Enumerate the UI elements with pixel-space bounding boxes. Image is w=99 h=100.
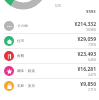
- button[interactable]: その他: [0, 19, 99, 33]
- staticText: 衣服・美容: [17, 84, 47, 89]
- staticText: ¥9,850: [80, 81, 96, 88]
- button[interactable]: 食費: [0, 49, 99, 63]
- staticText: 4.47%: [88, 73, 96, 77]
- staticText: 2.71%: [88, 88, 96, 92]
- button[interactable]: 趣味・娯楽: [0, 64, 99, 78]
- staticText: 7.99%: [88, 43, 96, 47]
- staticText: 趣味・娯楽: [17, 69, 47, 74]
- staticText: その他: [17, 24, 47, 29]
- staticText: ¥23,493: [77, 51, 96, 58]
- staticText: 0.2%: [55, 4, 61, 8]
- staticText: 58.98%: [86, 28, 96, 32]
- staticText: ¥593: [86, 9, 96, 15]
- staticText: 住宅: [17, 39, 47, 44]
- staticText: 食費: [17, 54, 47, 59]
- staticText: ¥29,059: [77, 36, 96, 43]
- staticText: ¥214,332: [74, 21, 96, 28]
- staticText: 6.46%: [88, 58, 96, 62]
- staticText: ¥16,281: [77, 66, 96, 73]
- button[interactable]: 衣服・美容: [0, 79, 99, 93]
- button[interactable]: 住宅: [0, 34, 99, 48]
